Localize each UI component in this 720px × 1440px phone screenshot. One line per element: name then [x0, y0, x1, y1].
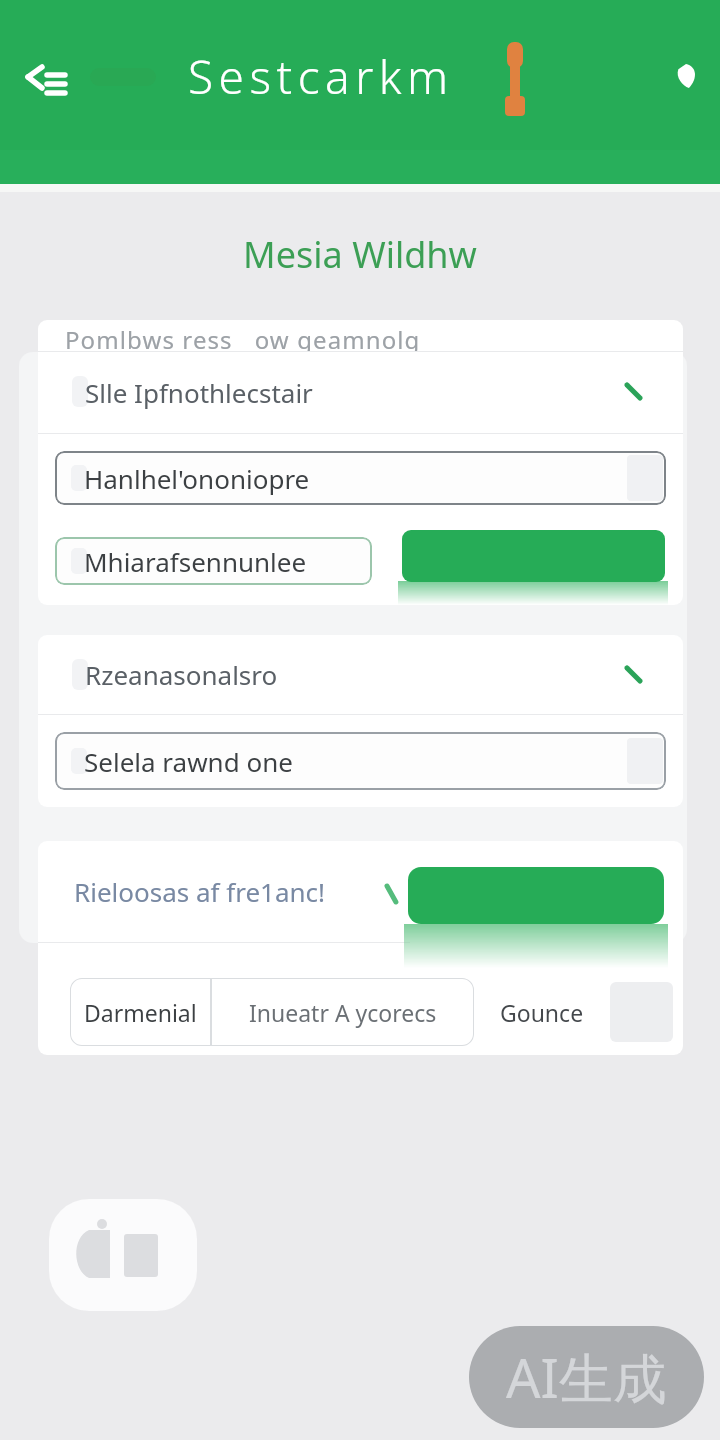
button[interactable]: Get the app [49, 1199, 197, 1311]
button[interactable]: Selela rawnd one [55, 732, 666, 790]
button[interactable]: Rzeanasonalsro [38, 635, 683, 714]
staticText: Rieloosas af fre1anc! [74, 874, 326, 909]
button[interactable]: Submit [402, 530, 665, 582]
button[interactable]: Continue [408, 867, 664, 924]
button[interactable]: More options [660, 50, 712, 102]
staticText: Pomlbws ress ow geamnolg [65, 323, 421, 351]
button[interactable]: Gounce [474, 978, 610, 1046]
staticText: Gounce [500, 997, 584, 1028]
staticText: Rzeanasonalsro [85, 657, 278, 692]
staticText: AI生成 [506, 1340, 667, 1414]
button[interactable]: Inueatr A ycorecs [211, 978, 474, 1046]
staticText: Selela rawnd one [84, 744, 293, 779]
staticText: Mesia Wildhw [243, 230, 477, 279]
button[interactable]: Back [5, 46, 85, 126]
button[interactable]: Slle Ipfnothlecstair [38, 351, 683, 433]
staticText: Sestcarkm [188, 45, 454, 108]
staticText: Darmenial [84, 997, 197, 1028]
staticText: Slle Ipfnothlecstair [85, 375, 313, 410]
button[interactable]: Mhiarafsennunlee [55, 537, 372, 585]
staticText: Inueatr A ycorecs [249, 997, 437, 1028]
button[interactable]: Darmenial [70, 978, 211, 1046]
staticText: Mhiarafsennunlee [84, 544, 307, 579]
staticText: Hanlhel'ononiopre [84, 461, 310, 496]
button[interactable]: Hanlhel'ononiopre [55, 451, 666, 505]
